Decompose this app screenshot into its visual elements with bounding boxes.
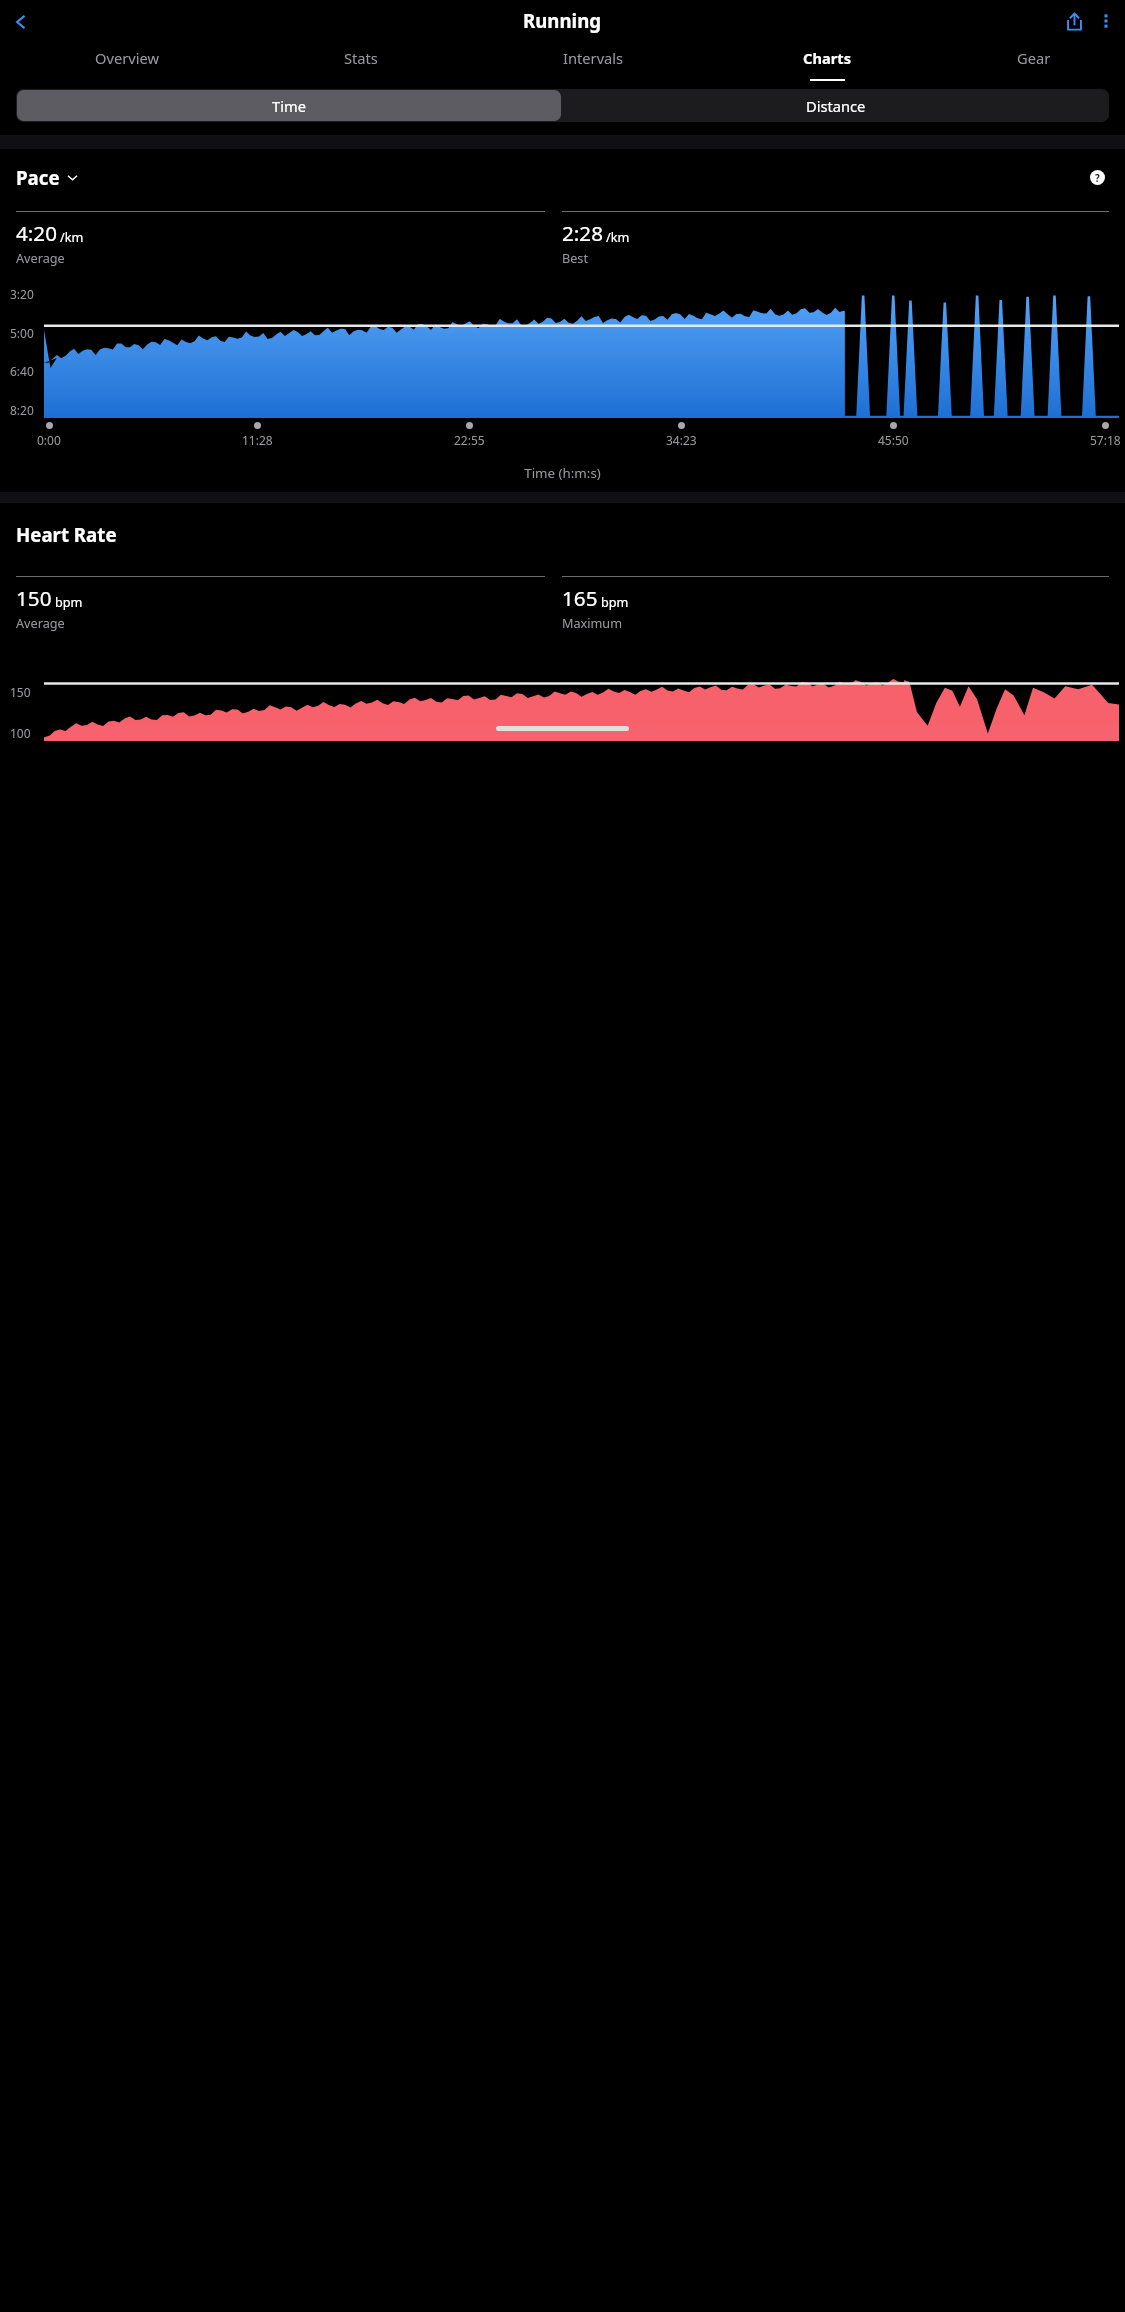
staticText: 57:18 bbox=[1090, 432, 1121, 448]
staticText: 45:50 bbox=[878, 432, 909, 448]
button[interactable]: More options bbox=[1090, 5, 1122, 37]
staticText: bpm bbox=[55, 593, 83, 610]
button[interactable]: Pace bbox=[16, 165, 79, 190]
staticText: Time bbox=[272, 96, 306, 116]
button[interactable]: Help bbox=[1086, 166, 1109, 189]
staticText: Pace bbox=[16, 165, 60, 190]
staticText: Gear bbox=[1017, 48, 1051, 68]
staticText: 4:20 bbox=[16, 219, 57, 247]
staticText: Stats bbox=[344, 48, 378, 68]
button[interactable]: Stats bbox=[244, 42, 477, 82]
staticText: 0:00 bbox=[37, 432, 61, 448]
staticText: 150 bbox=[16, 584, 52, 612]
staticText: /km bbox=[606, 228, 630, 245]
staticText: 6:40 bbox=[10, 363, 34, 379]
staticText: Heart Rate bbox=[16, 522, 117, 547]
staticText: 5:00 bbox=[10, 325, 34, 341]
button[interactable]: Intervals bbox=[477, 42, 710, 82]
staticText: 100 bbox=[10, 725, 31, 741]
staticText: 165 bbox=[562, 584, 598, 612]
staticText: Charts bbox=[803, 48, 851, 68]
staticText: 8:20 bbox=[10, 402, 34, 418]
staticText: Average bbox=[16, 249, 65, 266]
button[interactable]: Distance bbox=[562, 89, 1109, 122]
staticText: 150 bbox=[10, 684, 31, 700]
staticText: Best bbox=[562, 249, 588, 266]
button[interactable]: Time bbox=[17, 90, 561, 121]
staticText: 22:55 bbox=[454, 432, 485, 448]
staticText: Intervals bbox=[563, 48, 624, 68]
button[interactable]: Charts bbox=[710, 42, 943, 82]
button[interactable]: Gear bbox=[943, 42, 1125, 82]
staticText: 2:28 bbox=[562, 219, 603, 247]
staticText: Time (h:m:s) bbox=[0, 464, 1125, 482]
staticText: 34:23 bbox=[666, 432, 697, 448]
staticText: Distance bbox=[806, 96, 866, 116]
staticText: Maximum bbox=[562, 614, 623, 631]
staticText: 3:20 bbox=[10, 286, 34, 302]
staticText: bpm bbox=[601, 593, 629, 610]
staticText: /km bbox=[60, 228, 84, 245]
staticText: Running bbox=[523, 8, 602, 33]
staticText: 11:28 bbox=[242, 432, 273, 448]
button[interactable]: Back bbox=[3, 4, 38, 39]
staticText: Overview bbox=[95, 48, 159, 68]
button[interactable]: Share bbox=[1058, 5, 1090, 37]
button[interactable]: Overview bbox=[10, 42, 244, 82]
staticText: ? bbox=[1095, 171, 1100, 185]
staticText: Average bbox=[16, 614, 65, 631]
